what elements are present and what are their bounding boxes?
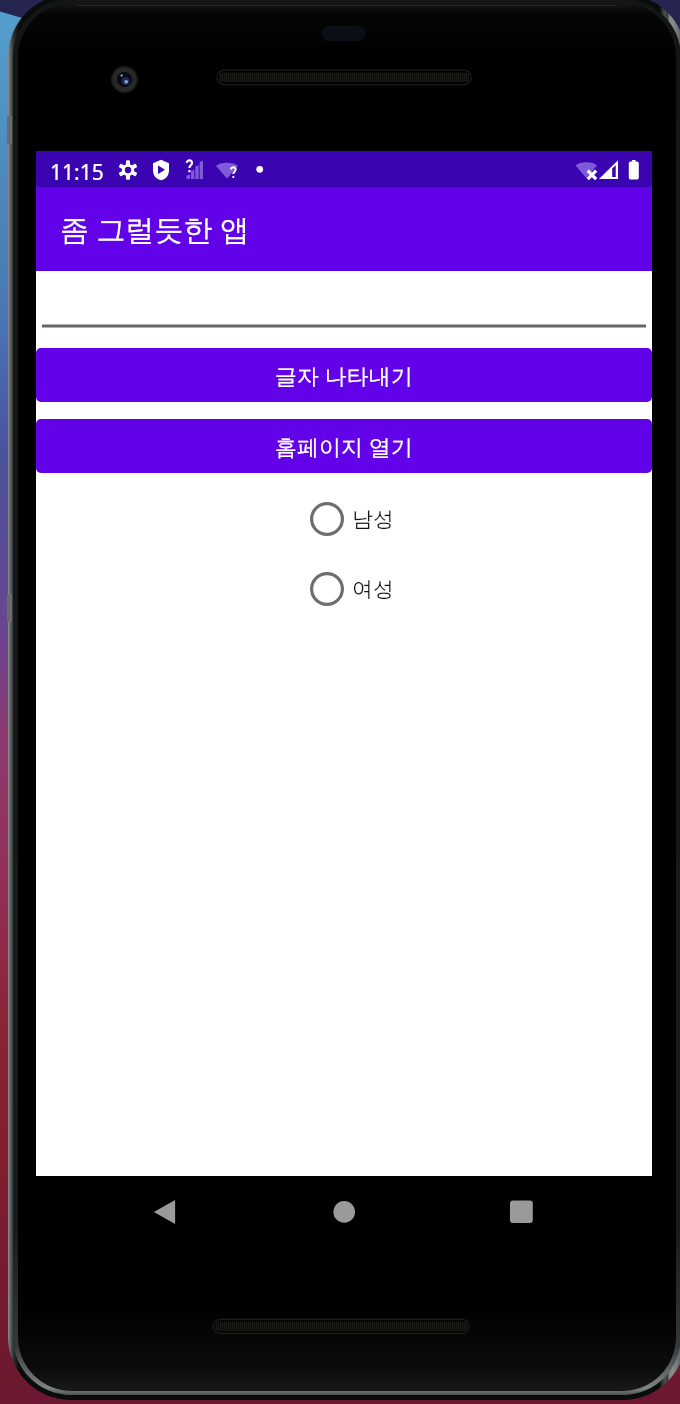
button[interactable]: 남성 (36, 502, 652, 536)
staticText: 11:15 (50, 158, 104, 187)
button[interactable]: Recent apps (491, 1188, 551, 1236)
staticText: 여성 (352, 576, 394, 602)
staticText: 남성 (352, 506, 394, 532)
button[interactable]: 글자 나타내기 (36, 348, 652, 402)
button[interactable]: 여성 (36, 572, 652, 606)
button[interactable]: 홈페이지 열기 (36, 419, 652, 473)
button[interactable]: Home (314, 1188, 374, 1236)
staticText: 좀 그럴듯한 앱 (60, 209, 250, 249)
button[interactable]: Back (134, 1188, 194, 1236)
button[interactable] (36, 274, 652, 328)
staticText: 홈페이지 열기 (275, 431, 413, 461)
staticText: 글자 나타내기 (275, 360, 413, 390)
